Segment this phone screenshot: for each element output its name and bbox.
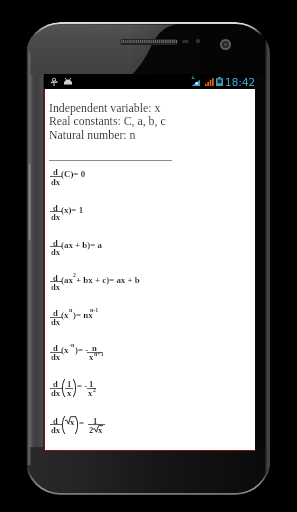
- staticText: + bx + c)= ax + b: [76, 275, 140, 285]
- staticText: x: [67, 388, 72, 398]
- staticText: )= -: [75, 345, 89, 355]
- staticText: x: [70, 417, 75, 427]
- staticText: (ax + b)= a: [61, 240, 103, 250]
- staticText: 1: [67, 379, 72, 389]
- staticText: d: [53, 343, 58, 353]
- staticText: 18:42: [225, 76, 256, 88]
- staticText: dx: [51, 247, 61, 257]
- staticText: Natural number: n: [49, 128, 136, 141]
- staticText: Independent variable: x: [49, 101, 161, 114]
- staticText: = -: [77, 381, 88, 391]
- staticText: x: [88, 388, 93, 398]
- staticText: =: [79, 418, 87, 428]
- staticText: 2: [73, 272, 76, 279]
- staticText: d: [53, 203, 58, 213]
- staticText: n-1: [90, 307, 99, 314]
- staticText: n: [92, 343, 97, 353]
- staticText: dx: [51, 425, 61, 435]
- staticText: d: [53, 238, 58, 248]
- other: Signal strength: [205, 78, 214, 86]
- other: USB connected: [51, 78, 57, 86]
- staticText: dx: [51, 282, 61, 292]
- staticText: dx: [51, 388, 61, 398]
- staticText: Real constants: C, a, b, c: [49, 114, 166, 127]
- other: Mobile data: [191, 77, 200, 86]
- button[interactable]: [45, 89, 255, 450]
- staticText: dx: [51, 352, 61, 362]
- staticText: x: [98, 425, 103, 435]
- staticText: )= nx: [73, 310, 93, 320]
- staticText: d: [53, 273, 58, 283]
- staticText: (x: [61, 345, 69, 355]
- staticText: d: [53, 167, 58, 177]
- staticText: d: [53, 379, 58, 389]
- staticText: 1: [93, 416, 98, 426]
- staticText: (ax: [61, 275, 73, 285]
- staticText: n+1: [94, 351, 104, 358]
- other: Android debugging: [64, 79, 72, 85]
- staticText: dx: [51, 177, 61, 187]
- staticText: x: [89, 352, 94, 362]
- staticText: 1: [89, 379, 94, 389]
- staticText: (x)= 1: [61, 205, 84, 215]
- staticText: dx: [51, 317, 61, 327]
- staticText: (C)= 0: [61, 169, 86, 179]
- other: Battery charging: [216, 77, 223, 86]
- staticText: 2: [89, 425, 94, 435]
- staticText: dx: [51, 212, 61, 222]
- staticText: 2: [93, 387, 96, 394]
- staticText: (x: [61, 310, 69, 320]
- staticText: d: [53, 308, 58, 318]
- staticText: -n: [69, 342, 75, 349]
- staticText: n: [69, 307, 73, 314]
- staticText: d: [53, 416, 58, 426]
